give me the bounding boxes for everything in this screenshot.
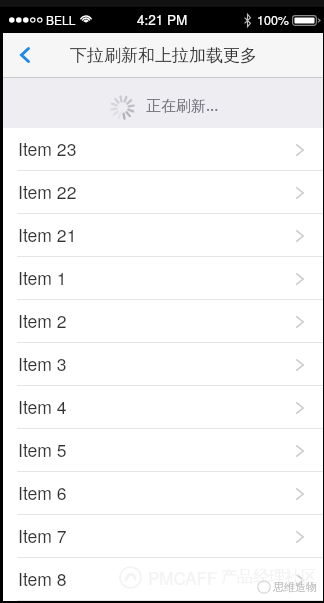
staticText: 100% <box>257 11 289 29</box>
button[interactable]: Item 5 <box>3 429 323 472</box>
staticText: Item 7 <box>18 523 67 548</box>
button[interactable]: Item 21 <box>3 214 323 257</box>
staticText: Item 23 <box>18 136 77 161</box>
button[interactable]: Item 23 <box>3 128 323 171</box>
button[interactable]: Item 4 <box>3 386 323 429</box>
staticText: Item 1 <box>18 265 67 290</box>
staticText: 思维造物 <box>273 580 317 594</box>
staticText: 4:21 PM <box>137 10 188 29</box>
staticText: 正在刷新... <box>146 95 219 115</box>
button[interactable]: Item 1 <box>3 257 323 300</box>
staticText: 产品经理社区 <box>221 567 317 587</box>
staticText: BELL <box>46 11 76 28</box>
button[interactable]: Item 3 <box>3 343 323 386</box>
staticText: 下拉刷新和上拉加载更多 <box>70 45 257 66</box>
staticText: Item 2 <box>18 308 67 333</box>
button[interactable]: Item 2 <box>3 300 323 343</box>
staticText: Item 8 <box>18 566 67 591</box>
staticText: PMCAFF <box>148 565 218 589</box>
staticText: Item 3 <box>18 351 67 376</box>
button[interactable]: Item 6 <box>3 472 323 515</box>
button[interactable]: Item 22 <box>3 171 323 214</box>
staticText: Item 4 <box>18 394 67 419</box>
staticText: Item 6 <box>18 480 67 505</box>
button[interactable]: Item 7 <box>3 515 323 558</box>
staticText: Item 22 <box>18 179 77 204</box>
staticText: Item 5 <box>18 437 67 462</box>
staticText: Item 21 <box>18 222 77 247</box>
button[interactable]: Back <box>3 33 49 77</box>
button[interactable]: Item 8 <box>3 558 323 601</box>
